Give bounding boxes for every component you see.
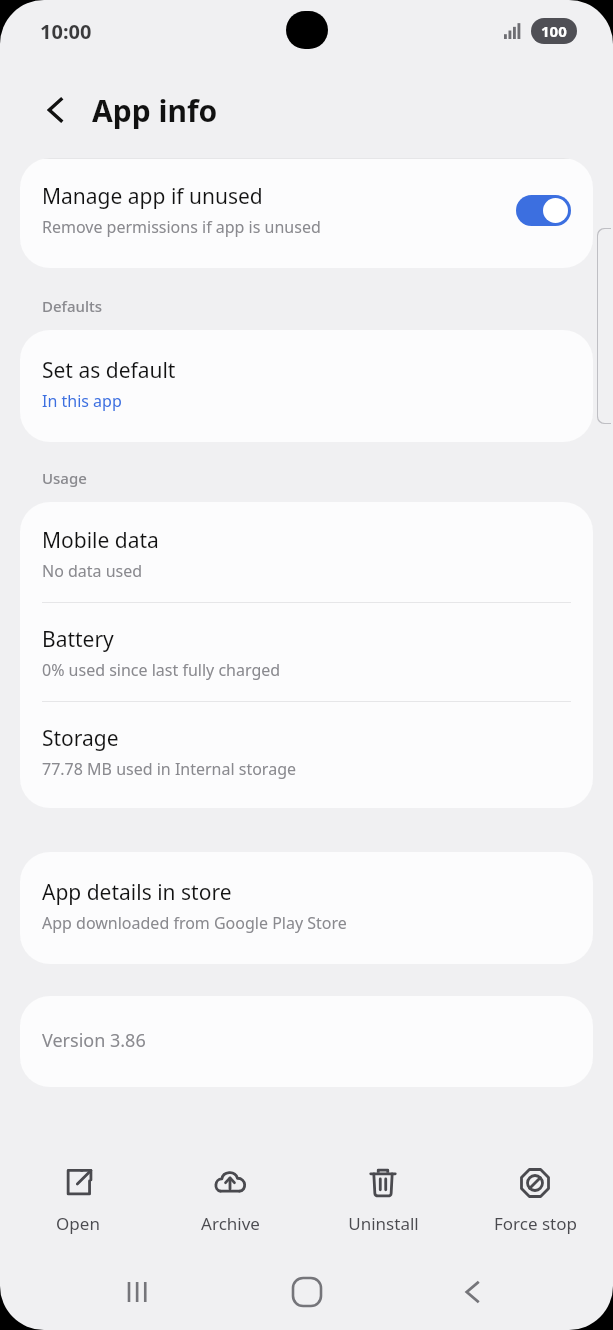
staticText: 0% used since last fully charged (42, 659, 281, 681)
staticText: In this app (42, 390, 122, 412)
staticText: App downloaded from Google Play Store (42, 912, 347, 934)
button[interactable]: Back (437, 1256, 509, 1328)
staticText: Remove permissions if app is unused (42, 216, 321, 238)
staticText: Version 3.86 (42, 1028, 146, 1053)
staticText: App info (92, 90, 218, 131)
staticText: Open (56, 1212, 100, 1235)
button[interactable]: Home (271, 1256, 343, 1328)
staticText: Storage (42, 724, 119, 753)
staticText: Set as default (42, 356, 176, 385)
button[interactable]: Back (28, 82, 84, 138)
button[interactable]: App details in store (20, 852, 593, 964)
button[interactable]: Set as default (20, 330, 593, 442)
button[interactable]: Open (3, 1160, 153, 1241)
button[interactable]: Archive (155, 1160, 305, 1241)
button[interactable]: Storage (20, 702, 593, 808)
staticText: Mobile data (42, 526, 159, 555)
button[interactable]: Manage app if unused (20, 158, 593, 268)
button[interactable]: Force stop (460, 1160, 610, 1241)
staticText: Defaults (42, 296, 103, 316)
staticText: No data used (42, 560, 143, 582)
staticText: Manage app if unused (42, 182, 263, 211)
staticText: Force stop (494, 1212, 577, 1235)
button[interactable]: Uninstall (308, 1160, 458, 1241)
button[interactable]: Battery (20, 603, 593, 701)
staticText: 100 (541, 21, 567, 41)
button[interactable]: Mobile data (20, 502, 593, 602)
staticText: Archive (201, 1212, 260, 1235)
staticText: Uninstall (348, 1212, 419, 1235)
button[interactable]: Recents (104, 1256, 176, 1328)
staticText: 77.78 MB used in Internal storage (42, 758, 297, 780)
staticText: Battery (42, 625, 114, 654)
staticText: 10:00 (40, 18, 92, 45)
staticText: Usage (42, 468, 87, 488)
staticText: App details in store (42, 878, 232, 907)
